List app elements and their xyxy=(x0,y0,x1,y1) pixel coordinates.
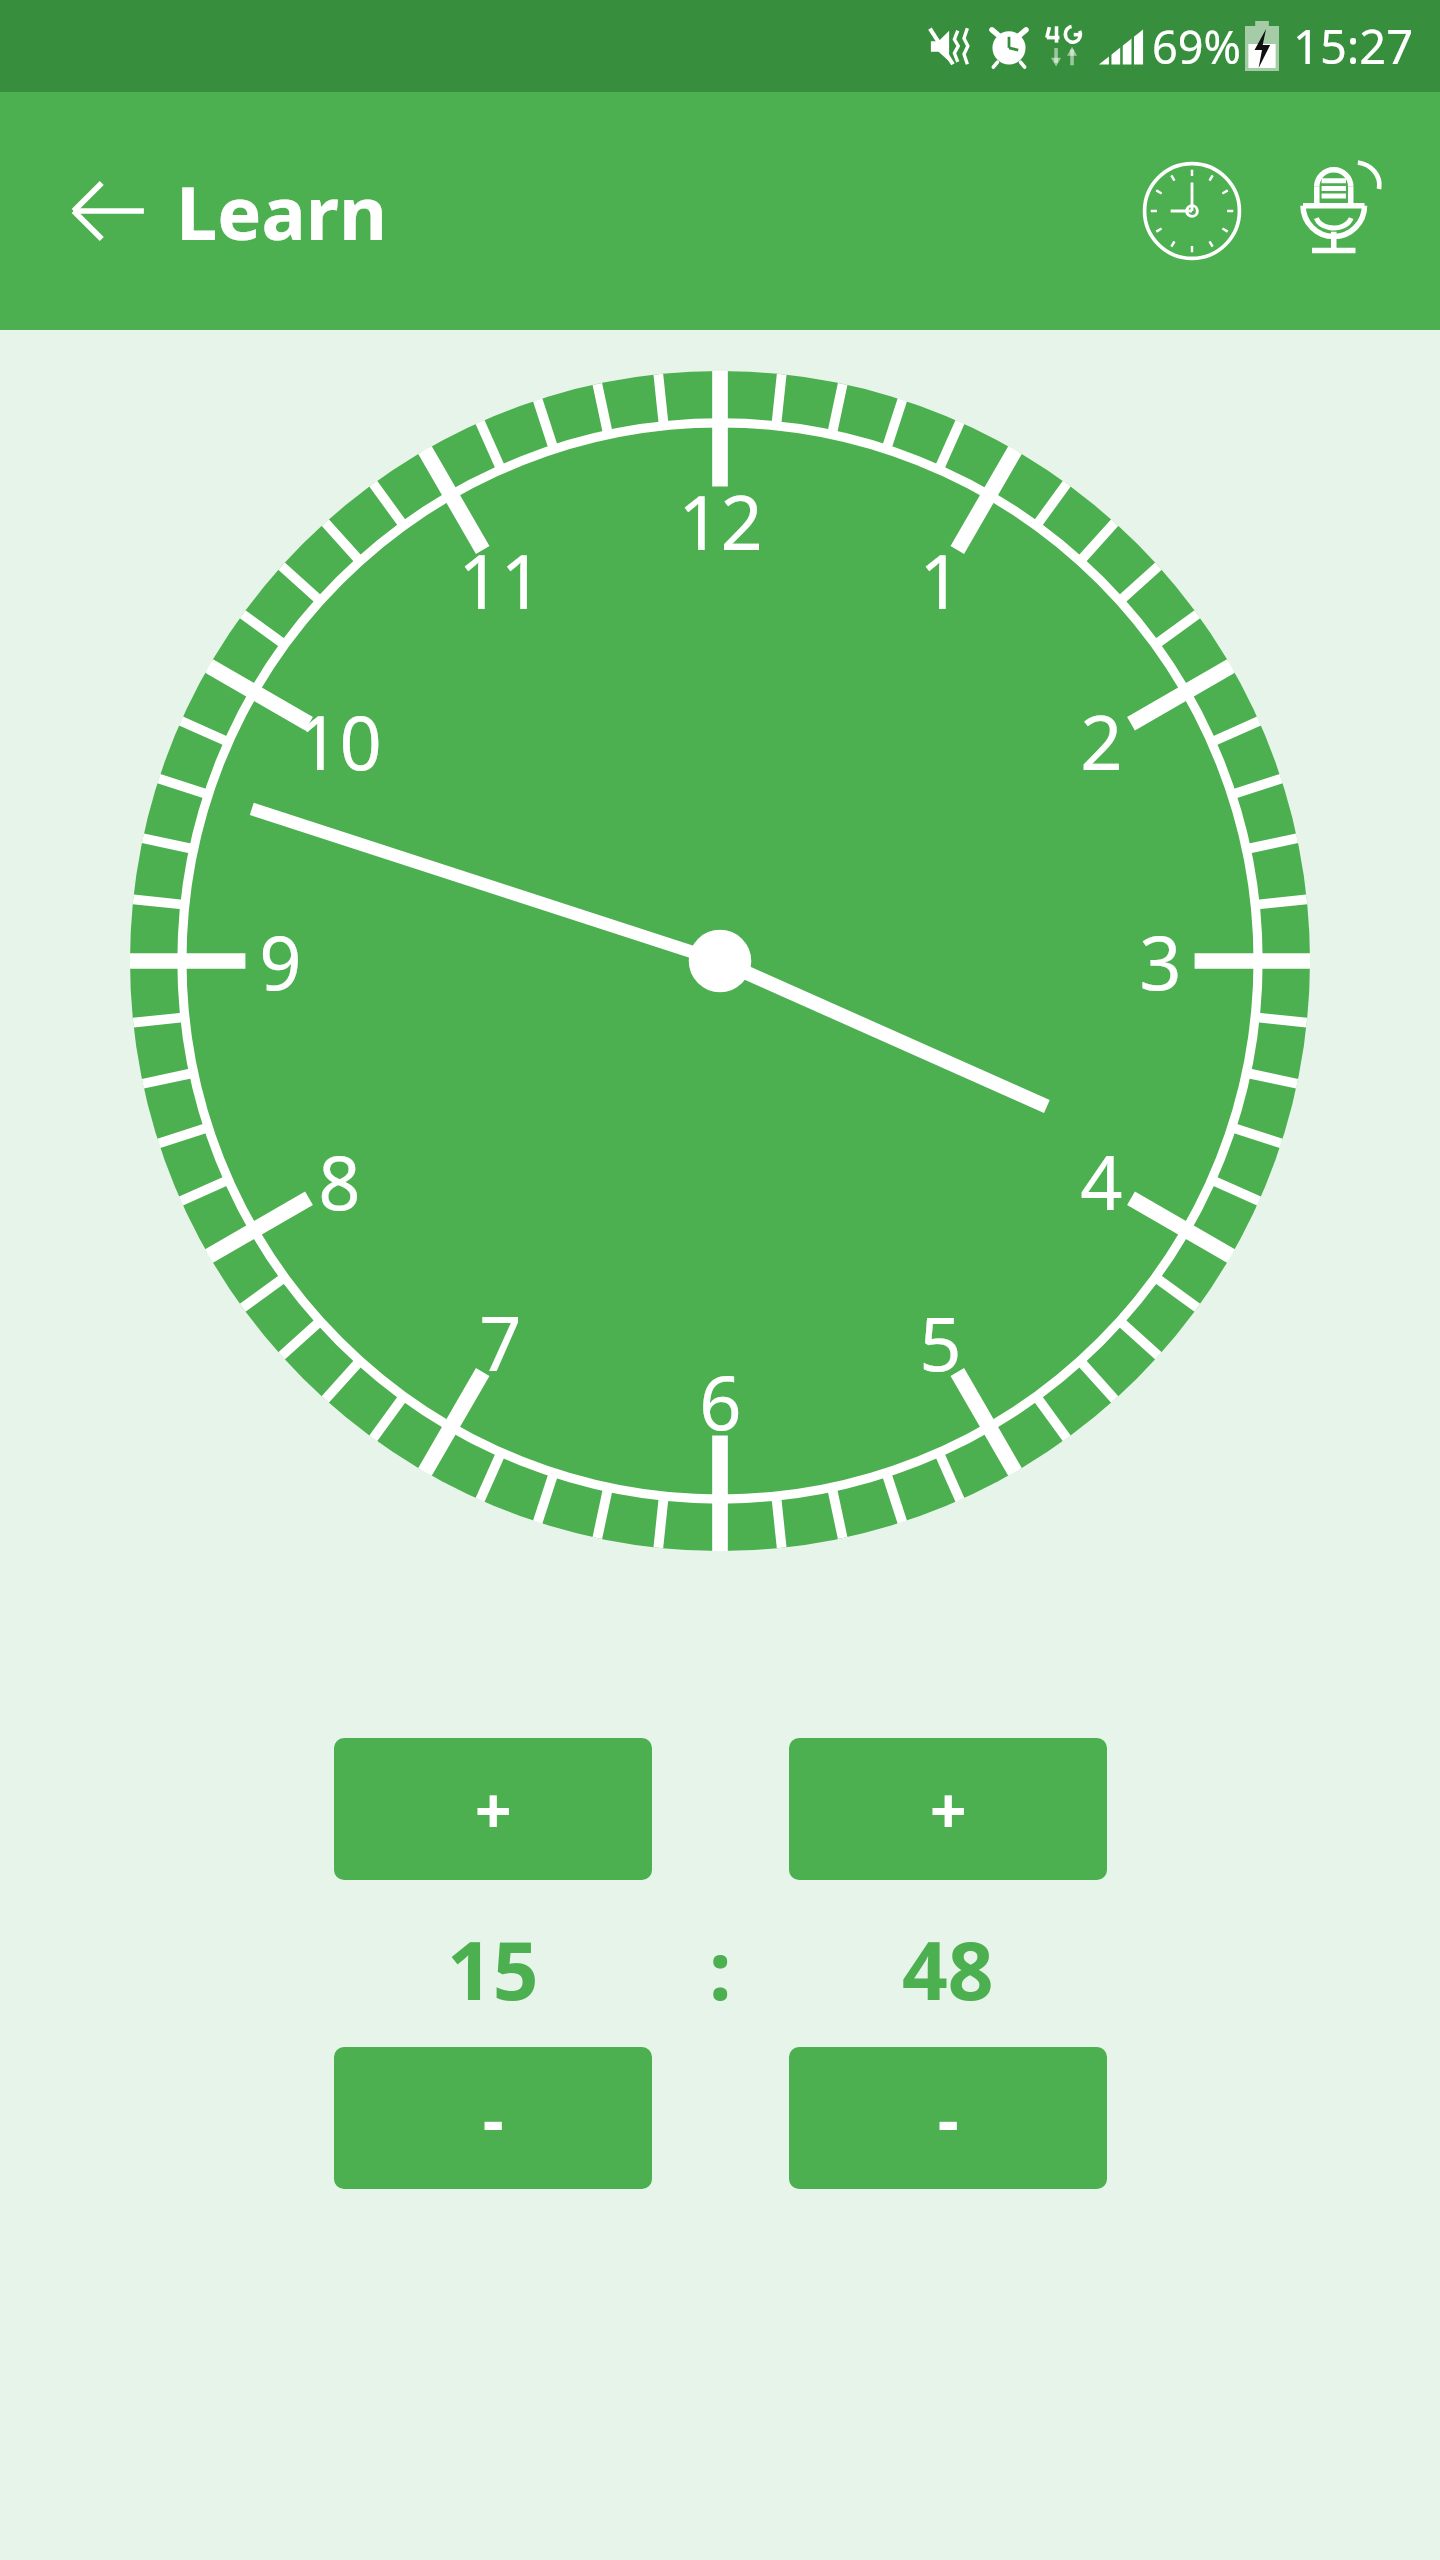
staticText: 69% xyxy=(1152,16,1241,77)
staticText: 15:27 xyxy=(1293,14,1414,78)
staticText: 6 xyxy=(699,1351,742,1452)
staticText: 5 xyxy=(919,1292,962,1393)
staticText: 1 xyxy=(919,530,962,631)
staticText: 7 xyxy=(479,1292,522,1393)
staticText: - xyxy=(483,2075,504,2162)
staticText: 15 xyxy=(447,1914,539,2023)
staticText: 4 xyxy=(1080,1131,1123,1232)
staticText: 10 xyxy=(297,691,382,792)
staticText: 48 xyxy=(902,1914,994,2023)
staticText: 9 xyxy=(259,911,302,1012)
staticText: 12 xyxy=(678,471,763,572)
staticText: 2 xyxy=(1080,691,1123,792)
button[interactable]: Increase minutes xyxy=(789,1738,1107,1880)
staticText: + xyxy=(930,1766,967,1853)
staticText: : xyxy=(709,1914,732,2023)
button[interactable]: Clock xyxy=(1126,145,1258,277)
button[interactable]: Decrease hours xyxy=(334,2047,652,2189)
staticText: - xyxy=(938,2075,959,2162)
staticText: Learn xyxy=(176,161,388,262)
button[interactable]: Decrease minutes xyxy=(789,2047,1107,2189)
button[interactable]: Voice input xyxy=(1272,145,1404,277)
staticText: 8 xyxy=(318,1131,361,1232)
staticText: 3 xyxy=(1139,911,1182,1012)
staticText: 11 xyxy=(458,530,543,631)
staticText: + xyxy=(475,1766,512,1853)
button[interactable]: Increase hours xyxy=(334,1738,652,1880)
button[interactable]: Back xyxy=(52,155,164,267)
